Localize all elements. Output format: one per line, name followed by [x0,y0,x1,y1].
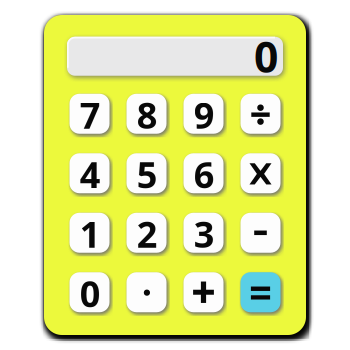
staticText: 6 [194,150,215,198]
staticText: 5 [137,150,158,198]
staticText: 3 [194,210,215,258]
button[interactable]: Equals [240,272,280,312]
button[interactable]: 8 [126,94,166,134]
button[interactable]: Decimal point [126,272,166,312]
button[interactable]: Minus [240,213,280,253]
staticText: 7 [80,91,101,139]
button[interactable]: 9 [183,94,223,134]
staticText: 1 [80,210,101,258]
button[interactable]: Plus [183,272,223,312]
button[interactable]: Divide [240,94,280,134]
button[interactable]: 3 [183,213,223,253]
button[interactable]: 5 [126,153,166,193]
button[interactable]: 0 [69,272,109,312]
staticText: 8 [137,91,158,139]
staticText: 2 [137,210,158,258]
staticText: 9 [194,91,215,139]
button[interactable]: 4 [69,153,109,193]
staticText: 0 [254,28,278,85]
button[interactable]: 1 [69,213,109,253]
staticText: 0 [80,269,101,317]
button[interactable]: Multiply [240,153,280,193]
staticText: 4 [80,150,101,198]
button[interactable]: 7 [69,94,109,134]
button[interactable]: 2 [126,213,166,253]
button[interactable]: 6 [183,153,223,193]
